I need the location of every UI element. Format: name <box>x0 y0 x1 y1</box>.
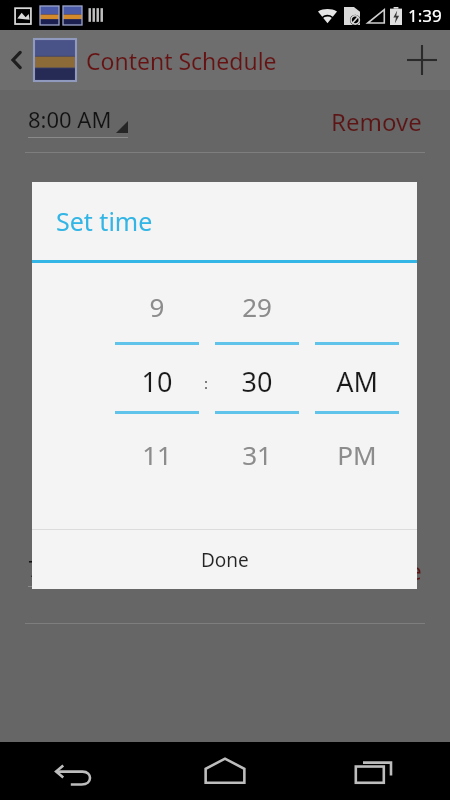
staticText: 29 <box>215 289 299 324</box>
button[interactable]: 8:00 AM <box>28 104 128 138</box>
staticText: 11 <box>115 437 199 472</box>
button[interactable]: Remove <box>331 105 422 138</box>
button[interactable]: Add <box>394 32 450 88</box>
staticText: 30 <box>215 363 299 400</box>
staticText: 9 <box>115 289 199 324</box>
staticText: Done <box>201 547 249 573</box>
button[interactable]: Back <box>0 742 150 800</box>
button[interactable]: Hour <box>115 263 199 528</box>
staticText: AM <box>315 363 399 400</box>
staticText: 7:00 AM <box>28 553 112 583</box>
staticText: Remove <box>331 105 422 138</box>
button[interactable]: Recent apps <box>300 742 450 800</box>
staticText: Content Schedule <box>86 45 277 76</box>
staticText: PM <box>315 437 399 472</box>
button[interactable]: Minute <box>215 263 299 528</box>
staticText: Remove <box>331 554 422 587</box>
staticText: Set time <box>56 204 153 238</box>
button[interactable]: Remove <box>331 554 422 587</box>
button[interactable]: Back <box>0 30 34 90</box>
button[interactable]: Home <box>150 742 300 800</box>
staticText: 31 <box>215 437 299 472</box>
button[interactable]: 7:00 AM <box>28 553 128 587</box>
staticText: 8:00 AM <box>28 104 112 134</box>
staticText: 1:39 <box>408 4 442 27</box>
button[interactable]: Done <box>32 530 417 589</box>
staticText: : <box>204 373 209 393</box>
button[interactable]: AM PM <box>315 263 399 528</box>
staticText: 10 <box>115 363 199 400</box>
